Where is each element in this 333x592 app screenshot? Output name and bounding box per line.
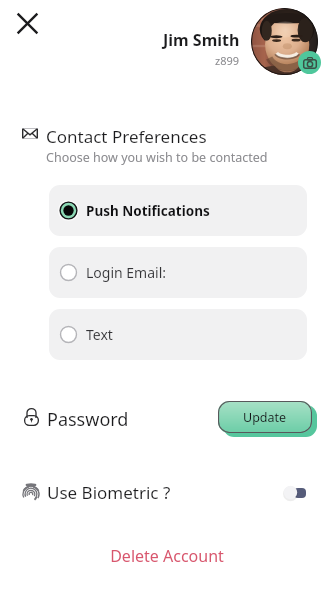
staticText: Delete Account <box>110 545 224 567</box>
staticText: Text <box>86 325 113 344</box>
staticText: Jim Smith <box>163 29 240 51</box>
button[interactable]: Update <box>218 401 312 433</box>
staticText: z899 <box>215 53 240 68</box>
button[interactable]: Login Email: <box>49 247 307 298</box>
button[interactable]: Close <box>13 9 42 38</box>
button[interactable]: Delete Account <box>0 545 333 567</box>
staticText: Login Email: <box>86 263 167 282</box>
button[interactable]: Text <box>49 309 307 360</box>
staticText: Password <box>47 407 129 432</box>
staticText: Contact Preferences <box>46 125 207 148</box>
staticText: Choose how you wish to be contacted <box>46 149 268 166</box>
staticText: Use Biometric ? <box>47 481 171 504</box>
staticText: Push Notifications <box>86 202 210 220</box>
button[interactable]: Push Notifications <box>49 185 307 236</box>
button[interactable]: Use biometric toggle <box>282 483 308 503</box>
button[interactable]: Change profile photo <box>298 51 321 74</box>
staticText: Update <box>243 409 287 426</box>
button[interactable]: Profile photo <box>251 8 318 75</box>
